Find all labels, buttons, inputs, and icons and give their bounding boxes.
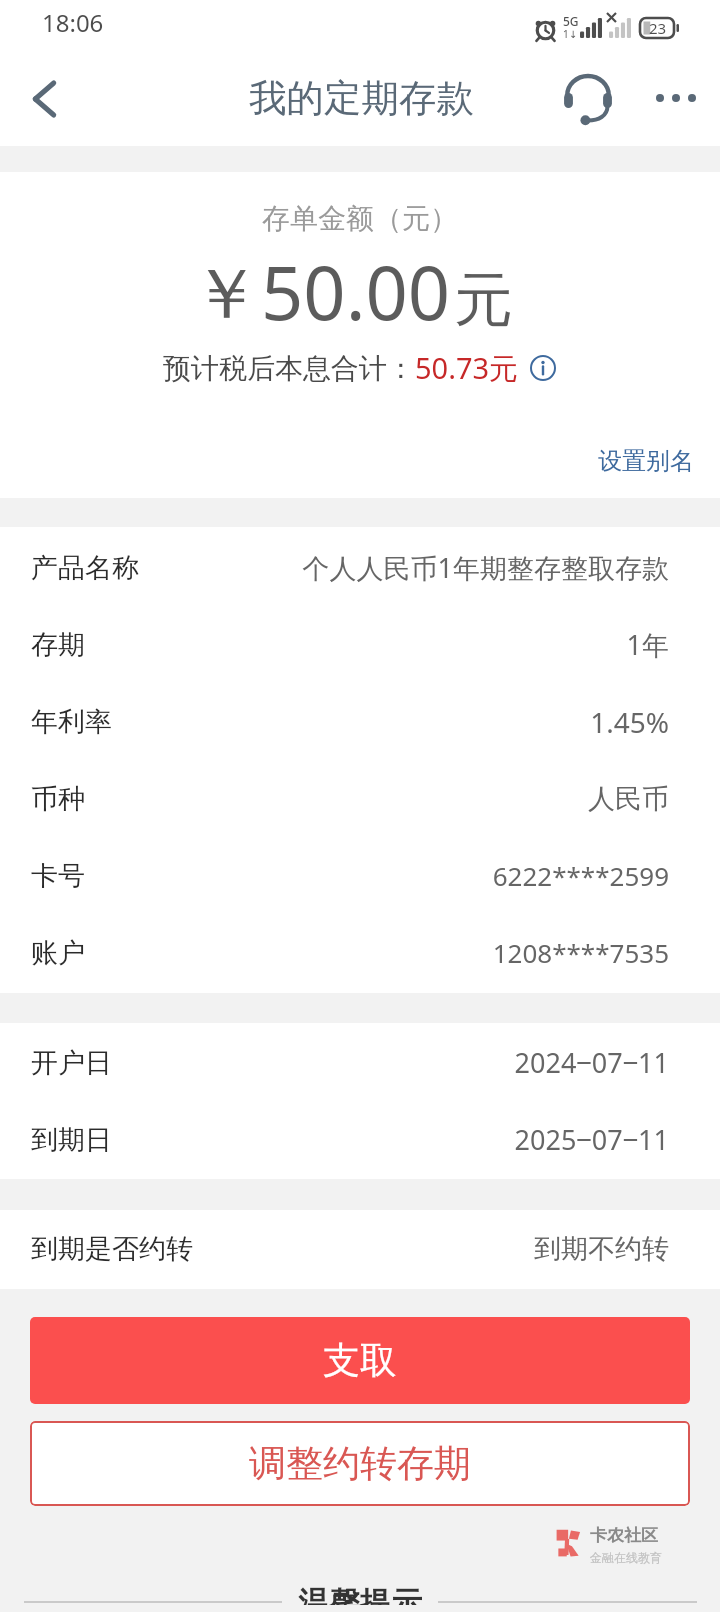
button[interactable]: 设置别名: [598, 446, 720, 498]
staticText: 产品名称: [31, 551, 139, 585]
button[interactable]: 到期日: [0, 1101, 720, 1178]
button[interactable]: Interest info: [528, 353, 558, 383]
staticText: 存期: [31, 628, 85, 662]
staticText: 温馨提示: [298, 1584, 422, 1605]
staticText: 金融在线教育: [590, 1550, 662, 1565]
staticText: 1208****7535: [492, 935, 669, 970]
staticText: 开户日: [31, 1046, 112, 1080]
staticText: 调整约转存期: [249, 1440, 471, 1487]
button[interactable]: 卡号: [0, 837, 720, 914]
staticText: 1↓: [563, 27, 578, 41]
staticText: 设置别名: [598, 446, 694, 476]
staticText: 我的定期存款: [249, 75, 474, 122]
staticText: 到期是否约转: [31, 1232, 193, 1266]
staticText: 到期日: [31, 1123, 112, 1157]
staticText: 6222****2599: [492, 858, 669, 893]
staticText: 年利率: [31, 705, 112, 739]
staticText: 存单金额（元）: [262, 201, 458, 236]
staticText: 50.73元: [415, 348, 519, 388]
staticText: 币种: [31, 782, 85, 816]
staticText: 账户: [31, 936, 85, 970]
button[interactable]: 调整约转存期: [30, 1421, 690, 1506]
staticText: ￥: [191, 251, 261, 339]
staticText: 支取: [323, 1337, 397, 1384]
button[interactable]: 存期: [0, 606, 720, 683]
staticText: 卡号: [31, 859, 85, 893]
button[interactable]: More options: [648, 59, 720, 143]
staticText: 到期不约转: [534, 1232, 669, 1266]
button[interactable]: 开户日: [0, 1024, 720, 1101]
staticText: 1.45%: [590, 703, 669, 741]
button[interactable]: Customer service: [562, 62, 626, 134]
button[interactable]: 账户: [0, 914, 720, 991]
button[interactable]: 产品名称: [0, 529, 720, 606]
staticText: 元: [454, 263, 513, 337]
button[interactable]: Back: [0, 56, 88, 146]
staticText: 人民币: [588, 782, 669, 816]
staticText: 2025‒07‒11: [514, 1121, 669, 1158]
staticText: 5G: [563, 13, 579, 29]
staticText: 预计税后本息合计：: [163, 351, 415, 386]
staticText: 2024‒07‒11: [514, 1044, 669, 1081]
button[interactable]: 币种: [0, 760, 720, 837]
staticText: 23: [649, 18, 667, 38]
staticText: 个人人民币1年期整存整取存款: [302, 549, 669, 586]
button[interactable]: 支取: [30, 1317, 690, 1404]
button[interactable]: 年利率: [0, 683, 720, 760]
staticText: 1年: [626, 626, 669, 663]
button[interactable]: 到期是否约转: [0, 1210, 720, 1287]
staticText: 18:06: [42, 6, 104, 39]
staticText: 卡农社区: [590, 1525, 658, 1546]
staticText: 50.00: [261, 241, 451, 342]
